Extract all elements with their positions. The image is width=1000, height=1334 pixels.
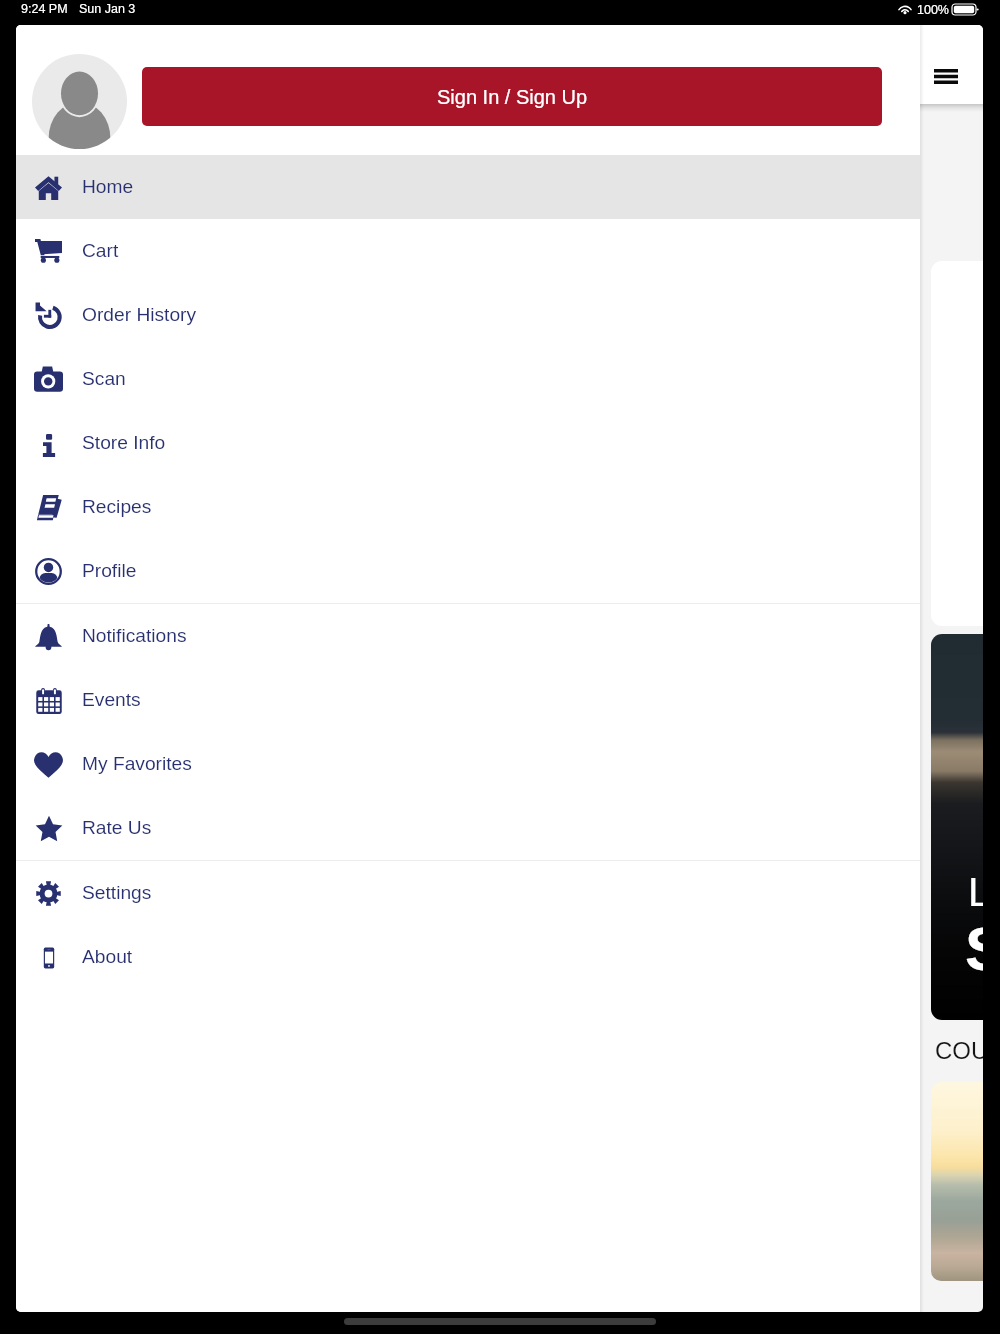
staticText: Scan <box>82 368 126 389</box>
button[interactable]: Recipes <box>16 475 920 539</box>
staticText: LI <box>968 869 983 915</box>
staticText: Store Info <box>82 432 166 453</box>
staticText: Profile <box>82 560 137 581</box>
staticText: S <box>965 914 983 983</box>
staticText: Settings <box>82 882 152 903</box>
staticText: Events <box>82 689 141 710</box>
button[interactable]: Store Info <box>16 411 920 475</box>
staticText: Rate Us <box>82 817 152 838</box>
button[interactable]: Order History <box>16 283 920 347</box>
button[interactable]: Open navigation menu <box>919 51 973 101</box>
button[interactable]: Rate Us <box>16 796 920 860</box>
staticText: My Favorites <box>82 753 192 774</box>
button[interactable]: Profile <box>16 539 920 603</box>
button[interactable]: Notifications <box>16 604 920 668</box>
staticText: Sign In / Sign Up <box>437 86 588 108</box>
staticText: Sun Jan 3 <box>79 2 136 16</box>
button[interactable]: Events <box>16 668 920 732</box>
staticText: Recipes <box>82 496 152 517</box>
button[interactable]: Home <box>16 155 920 219</box>
staticText: Order History <box>82 304 197 325</box>
button[interactable]: Scan <box>16 347 920 411</box>
button[interactable]: Settings <box>16 861 920 925</box>
staticText: 100% <box>917 3 949 17</box>
staticText: 9:24 PM <box>21 2 68 16</box>
button[interactable]: Destination card <box>931 1082 983 1281</box>
staticText: About <box>82 946 133 967</box>
staticText: Home <box>82 176 134 197</box>
button[interactable]: Sign In / Sign Up <box>142 67 882 126</box>
button[interactable]: About <box>16 925 920 989</box>
button[interactable]: My Favorites <box>16 732 920 796</box>
staticText: COU <box>935 1037 983 1064</box>
button[interactable]: Promotion card <box>931 634 983 1020</box>
staticText: Cart <box>82 240 119 261</box>
button[interactable]: Profile photo <box>32 54 127 149</box>
staticText: Notifications <box>82 625 187 646</box>
button[interactable]: Cart <box>16 219 920 283</box>
